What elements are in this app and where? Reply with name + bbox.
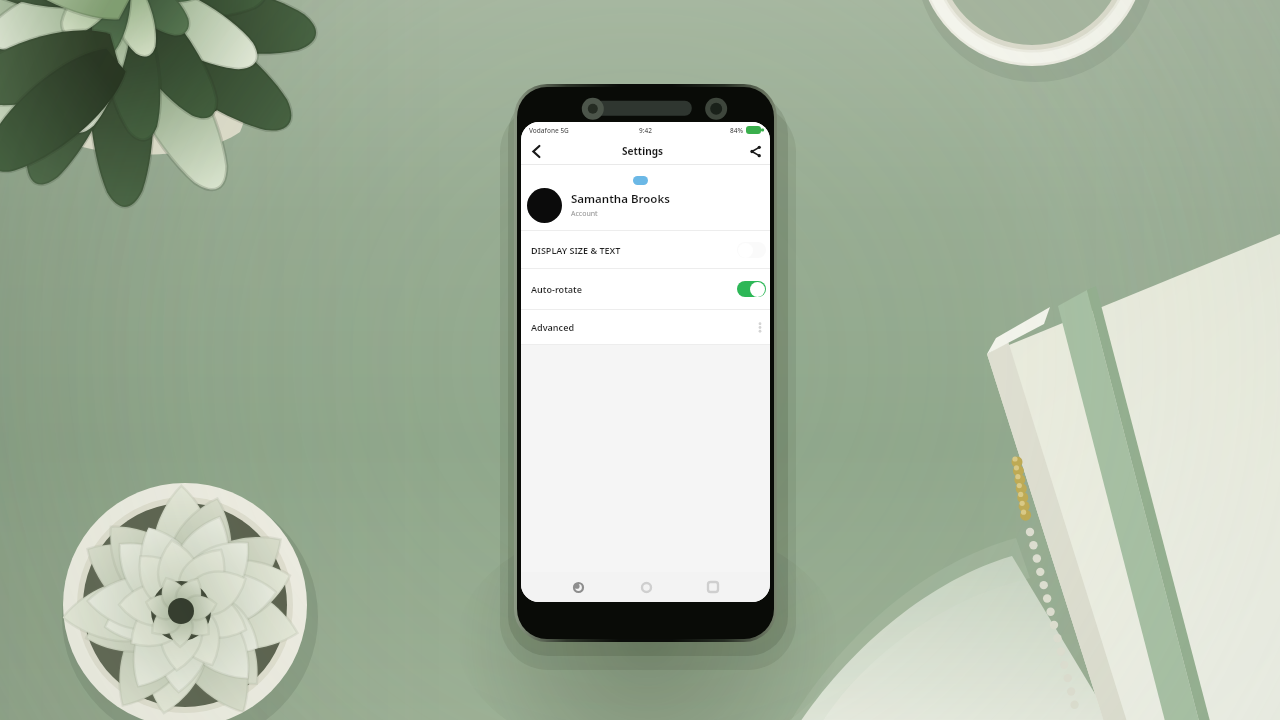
button[interactable]: Advanced [521, 310, 770, 344]
staticText: 84% [730, 126, 743, 135]
staticText: 9:42 [639, 126, 652, 135]
button[interactable]: Back [524, 139, 548, 163]
button[interactable]: Share [743, 139, 767, 163]
staticText: DISPLAY SIZE & TEXT [531, 244, 621, 256]
staticText: Settings [622, 144, 663, 158]
button[interactable]: Back [567, 576, 589, 598]
button[interactable]: Auto-rotate [521, 269, 770, 309]
staticText: Vodafone 5G [529, 126, 569, 135]
button[interactable]: DISPLAY SIZE & TEXT [521, 231, 770, 268]
button[interactable]: Home [635, 576, 657, 598]
button[interactable]: Toggle on [737, 281, 766, 297]
staticText: Advanced [531, 321, 575, 333]
staticText: Samantha Brooks [571, 191, 670, 207]
staticText: Account [571, 209, 598, 219]
button[interactable]: Samantha Brooks [521, 165, 770, 231]
button[interactable]: Recents [702, 576, 724, 598]
staticText: Auto-rotate [531, 283, 582, 295]
